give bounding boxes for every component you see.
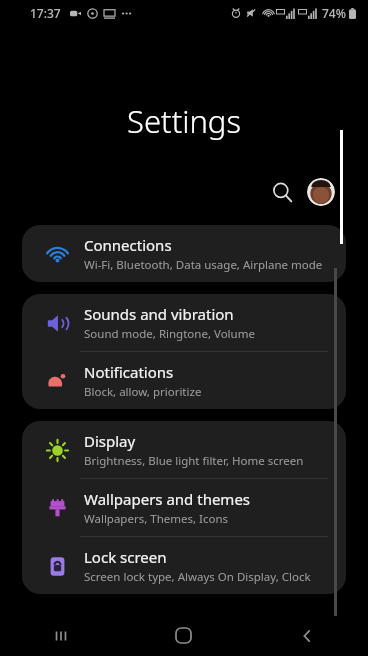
staticText: Screen lock type, Always On Display, Clo… (84, 569, 332, 585)
button[interactable]: Home (122, 615, 245, 656)
staticText: Wi-Fi, Bluetooth, Data usage, Airplane m… (84, 257, 323, 273)
button[interactable]: Wallpapers and themes (22, 479, 346, 536)
staticText: Display (84, 431, 136, 451)
staticText: Notifications (84, 362, 174, 382)
staticText: 74% (322, 5, 346, 21)
button[interactable]: Lock screen (22, 537, 346, 594)
staticText: 17:37 (30, 5, 61, 21)
button[interactable]: Search (265, 175, 299, 209)
staticText: Brightness, Blue light filter, Home scre… (84, 453, 304, 469)
staticText: Settings (0, 100, 368, 142)
staticText: Block, allow, prioritize (84, 384, 202, 400)
staticText: Wallpapers and themes (84, 489, 251, 509)
button[interactable]: Notifications (22, 352, 346, 409)
button[interactable]: Profile (307, 178, 335, 206)
staticText: Lock screen (84, 547, 167, 567)
button[interactable]: Recents (0, 615, 122, 656)
staticText: Wallpapers, Themes, Icons (84, 511, 229, 527)
staticText: Connections (84, 235, 172, 255)
staticText: Sounds and vibration (84, 304, 234, 324)
button[interactable]: Back (245, 615, 368, 656)
staticText: Sound mode, Ringtone, Volume (84, 326, 255, 342)
button[interactable]: Sounds and vibration (22, 294, 346, 351)
button[interactable]: Display (22, 421, 346, 478)
button[interactable]: Connections (22, 225, 346, 282)
